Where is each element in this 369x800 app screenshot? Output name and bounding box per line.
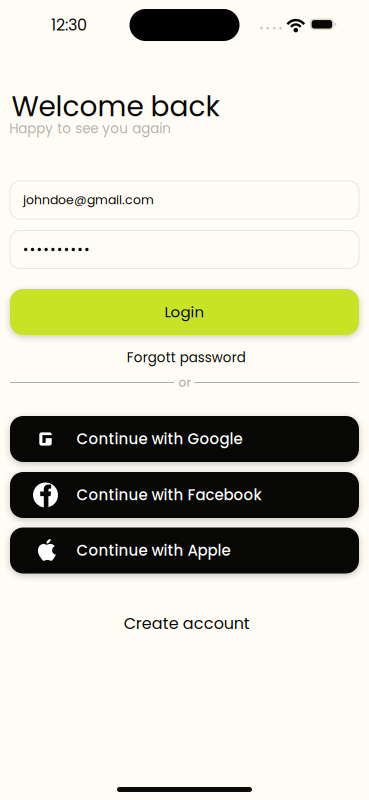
staticText: or <box>178 374 190 391</box>
staticText: 12:30 <box>51 14 87 36</box>
staticText: johndoe@gmail.com <box>23 191 154 209</box>
staticText: Continue with Apple <box>76 540 230 561</box>
button[interactable]: Continue with Facebook <box>10 472 359 518</box>
staticText: Welcome back <box>11 87 219 126</box>
button[interactable]: Login <box>10 289 359 335</box>
staticText: Forgott password <box>127 348 246 367</box>
staticText: Login <box>164 301 204 322</box>
button[interactable]: Create account <box>112 609 262 637</box>
staticText: Continue with Facebook <box>76 484 261 505</box>
button[interactable]: Continue with Apple <box>10 527 359 573</box>
button[interactable]: Continue with Google <box>10 416 359 462</box>
staticText: Continue with Google <box>76 428 242 449</box>
button[interactable]: Forgott password <box>106 345 266 369</box>
staticText: Happy to see you again <box>9 119 171 138</box>
staticText: Create account <box>124 612 250 635</box>
